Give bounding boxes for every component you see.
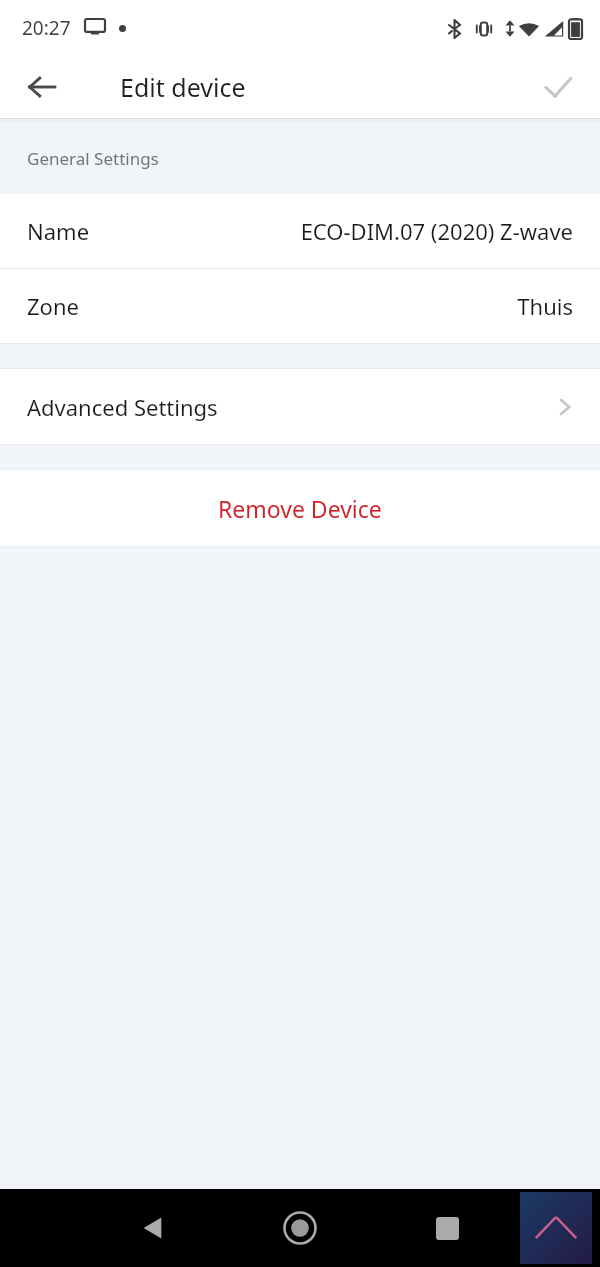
button[interactable]: Back	[125, 1200, 181, 1256]
button[interactable]: Home	[272, 1200, 328, 1256]
staticText: ECO-DIM.07 (2020) Z-wave	[300, 216, 573, 246]
staticText: Advanced Settings	[27, 392, 218, 422]
button[interactable]: Back	[16, 61, 68, 113]
staticText: Name	[27, 216, 90, 246]
staticText: Edit device	[120, 70, 246, 104]
button[interactable]: Name	[0, 194, 600, 268]
button[interactable]: Recents	[419, 1200, 475, 1256]
staticText: 20:27	[22, 15, 71, 41]
button[interactable]: Save	[532, 61, 584, 113]
staticText: General Settings	[27, 147, 159, 170]
button[interactable]: Advanced Settings	[0, 369, 600, 444]
button[interactable]: Zone	[0, 269, 600, 343]
button[interactable]: App shortcut	[520, 1192, 592, 1264]
staticText: Zone	[27, 291, 79, 321]
button[interactable]: Remove Device	[0, 470, 600, 546]
staticText: Thuis	[517, 291, 573, 321]
staticText: Remove Device	[218, 493, 382, 524]
